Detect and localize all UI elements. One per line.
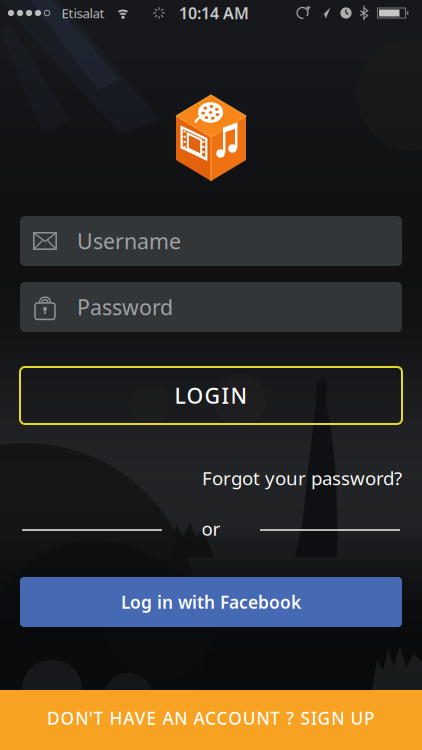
staticText: Password (77, 293, 173, 321)
button[interactable]: Password (20, 282, 402, 332)
staticText: 10:14 AM (179, 2, 249, 24)
button[interactable]: Username (20, 216, 402, 266)
staticText: DON'T HAVE AN ACCOUNT ? SIGN UP (47, 706, 375, 729)
staticText: Log in with Facebook (121, 590, 301, 613)
staticText: Etisalat (61, 4, 104, 22)
staticText: Username (77, 227, 181, 255)
button[interactable]: Log in with Facebook (20, 577, 402, 627)
button[interactable]: Forgot your password? (202, 466, 402, 490)
button[interactable]: LOGIN (20, 367, 402, 424)
staticText: LOGIN (174, 381, 247, 410)
staticText: Forgot your password? (202, 466, 402, 490)
staticText: or (201, 516, 220, 541)
button[interactable]: DON'T HAVE AN ACCOUNT ? SIGN UP (0, 690, 422, 750)
